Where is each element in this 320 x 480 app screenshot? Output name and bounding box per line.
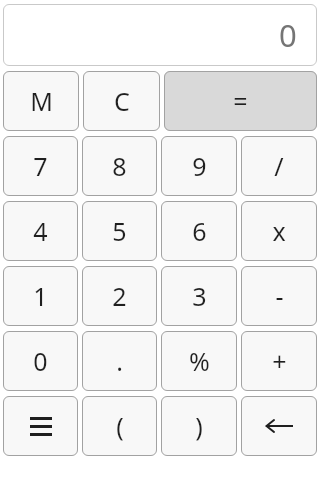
staticText: 6 bbox=[192, 214, 207, 248]
button[interactable]: ( bbox=[82, 396, 157, 456]
button[interactable]: 0 bbox=[3, 331, 78, 391]
staticText: + bbox=[272, 344, 287, 378]
button[interactable]: 4 bbox=[3, 201, 78, 261]
staticText: - bbox=[275, 279, 284, 313]
staticText: 8 bbox=[112, 149, 127, 183]
button[interactable]: 7 bbox=[3, 136, 78, 196]
button[interactable] bbox=[3, 396, 78, 456]
staticText: 1 bbox=[33, 279, 48, 313]
staticText: % bbox=[189, 344, 210, 378]
staticText: . bbox=[116, 344, 123, 378]
staticText: x bbox=[272, 214, 286, 248]
staticText: 0 bbox=[33, 344, 48, 378]
button[interactable]: = bbox=[164, 71, 317, 131]
button[interactable]: C bbox=[83, 71, 160, 131]
button[interactable]: 8 bbox=[82, 136, 157, 196]
staticText: 4 bbox=[33, 214, 48, 248]
staticText: / bbox=[274, 149, 284, 183]
staticText: C bbox=[114, 84, 130, 118]
staticText: = bbox=[233, 84, 248, 118]
button[interactable]: 6 bbox=[161, 201, 237, 261]
staticText: ( bbox=[116, 409, 124, 443]
staticText: 0 bbox=[279, 14, 297, 56]
button[interactable]: 2 bbox=[82, 266, 157, 326]
button[interactable]: ) bbox=[161, 396, 237, 456]
button[interactable]: - bbox=[241, 266, 317, 326]
staticText: 7 bbox=[33, 149, 48, 183]
button[interactable]: / bbox=[241, 136, 317, 196]
button[interactable]: 0 bbox=[3, 4, 317, 66]
button[interactable]: . bbox=[82, 331, 157, 391]
staticText: ) bbox=[195, 409, 203, 443]
button[interactable]: 1 bbox=[3, 266, 78, 326]
button[interactable]: x bbox=[241, 201, 317, 261]
staticText: 3 bbox=[192, 279, 207, 313]
staticText: 5 bbox=[112, 214, 127, 248]
button[interactable]: % bbox=[161, 331, 237, 391]
button[interactable]: 3 bbox=[161, 266, 237, 326]
button[interactable]: 9 bbox=[161, 136, 237, 196]
button[interactable]: + bbox=[241, 331, 317, 391]
button[interactable]: 5 bbox=[82, 201, 157, 261]
button[interactable] bbox=[241, 396, 317, 456]
staticText: M bbox=[30, 84, 53, 118]
staticText: 2 bbox=[112, 279, 127, 313]
button[interactable]: M bbox=[3, 71, 79, 131]
staticText: 9 bbox=[192, 149, 207, 183]
